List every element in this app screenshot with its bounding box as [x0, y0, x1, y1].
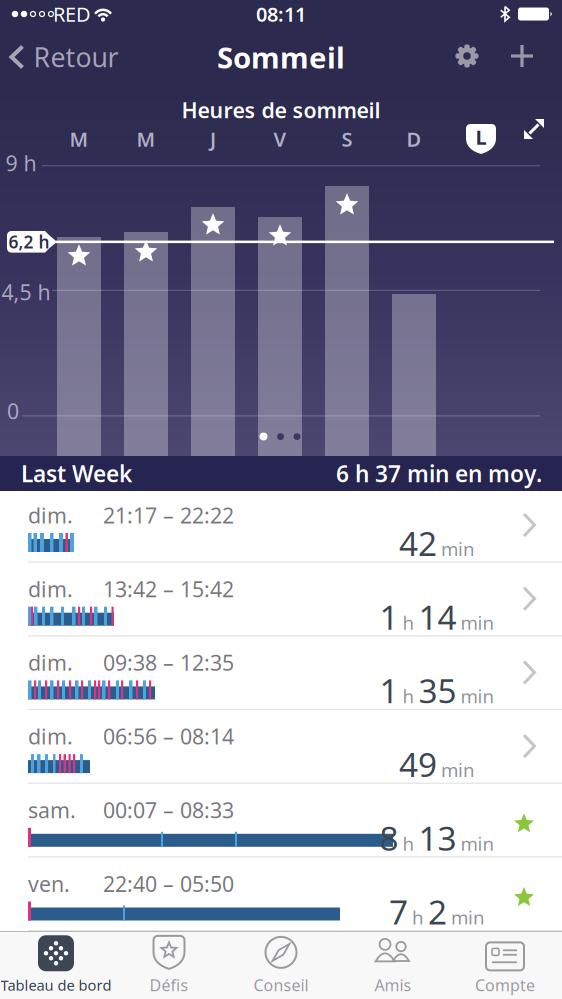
- staticText: dim.: [28, 575, 73, 603]
- staticText: 6,2 h: [8, 230, 49, 253]
- staticText: 1: [379, 668, 398, 713]
- button[interactable]: dim.: [0, 563, 562, 636]
- staticText: Heures de sommeil: [181, 96, 380, 124]
- staticText: M: [136, 126, 155, 152]
- staticText: L: [475, 124, 486, 150]
- button[interactable]: [509, 43, 535, 69]
- staticText: Retour: [33, 39, 118, 75]
- staticText: ven.: [28, 869, 70, 898]
- staticText: Tableau de bord: [0, 975, 111, 995]
- button[interactable]: dim.: [0, 489, 562, 563]
- staticText: h: [412, 905, 424, 930]
- staticText: sam.: [28, 796, 76, 824]
- staticText: 42: [399, 521, 437, 565]
- staticText: 8: [379, 816, 398, 860]
- staticText: 7: [389, 889, 408, 934]
- button[interactable]: Retour: [9, 39, 118, 75]
- button[interactable]: Compte: [475, 934, 535, 996]
- button[interactable]: Conseil: [253, 934, 308, 996]
- staticText: Sommeil: [217, 37, 345, 76]
- staticText: Last Week: [21, 458, 132, 488]
- staticText: V: [273, 126, 286, 152]
- staticText: RED: [53, 1, 91, 27]
- button[interactable]: ven.: [0, 857, 562, 931]
- staticText: 00:07 – 08:33: [103, 796, 234, 824]
- staticText: h: [402, 831, 414, 856]
- staticText: 21:17 – 22:22: [103, 501, 234, 529]
- button[interactable]: L: [466, 124, 496, 154]
- staticText: h: [402, 610, 414, 635]
- button[interactable]: Tableau de bord: [0, 935, 111, 995]
- staticText: J: [210, 126, 216, 152]
- button[interactable]: sam.: [0, 784, 562, 857]
- staticText: Défis: [149, 974, 188, 996]
- staticText: min: [441, 757, 475, 782]
- staticText: 2: [428, 889, 447, 934]
- staticText: min: [441, 536, 475, 561]
- staticText: 6 h 37 min en moy.: [336, 458, 542, 488]
- button[interactable]: Amis: [372, 934, 414, 996]
- staticText: 1: [379, 595, 398, 639]
- staticText: dim.: [28, 501, 73, 529]
- button[interactable]: dim.: [0, 636, 562, 710]
- staticText: 4,5 h: [1, 278, 50, 306]
- staticText: 22:40 – 05:50: [103, 869, 234, 898]
- staticText: 13:42 – 15:42: [103, 575, 234, 603]
- staticText: min: [451, 905, 485, 930]
- staticText: min: [460, 610, 494, 635]
- staticText: Compte: [475, 974, 535, 996]
- staticText: h: [402, 684, 414, 708]
- button[interactable]: [454, 43, 480, 69]
- staticText: 9 h: [5, 149, 36, 177]
- staticText: 49: [399, 742, 437, 786]
- staticText: Conseil: [253, 974, 308, 996]
- staticText: Amis: [374, 974, 411, 996]
- staticText: M: [69, 126, 88, 152]
- button[interactable]: dim.: [0, 710, 562, 784]
- staticText: 06:56 – 08:14: [103, 722, 234, 750]
- staticText: dim.: [28, 648, 73, 677]
- staticText: min: [460, 831, 494, 856]
- staticText: 08:11: [256, 1, 306, 27]
- staticText: dim.: [28, 722, 73, 750]
- staticText: 0: [7, 397, 19, 425]
- staticText: S: [341, 126, 352, 152]
- staticText: D: [406, 126, 421, 152]
- staticText: 09:38 – 12:35: [103, 648, 234, 677]
- staticText: min: [460, 684, 494, 708]
- staticText: 14: [418, 595, 456, 639]
- staticText: 35: [418, 668, 456, 713]
- button[interactable]: Défis: [149, 934, 188, 996]
- staticText: 13: [418, 816, 456, 860]
